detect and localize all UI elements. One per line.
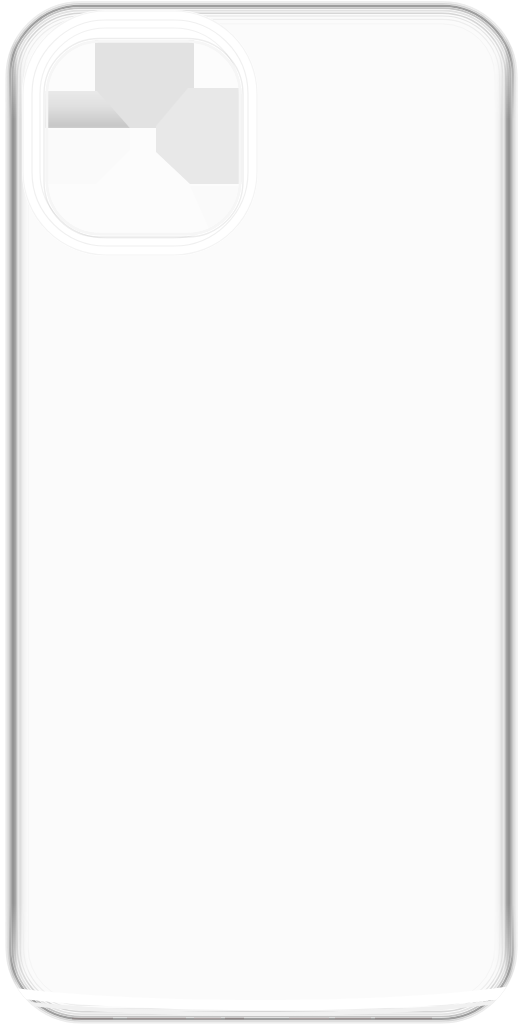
button[interactable]: Clear phone case product photo xyxy=(0,0,522,1024)
